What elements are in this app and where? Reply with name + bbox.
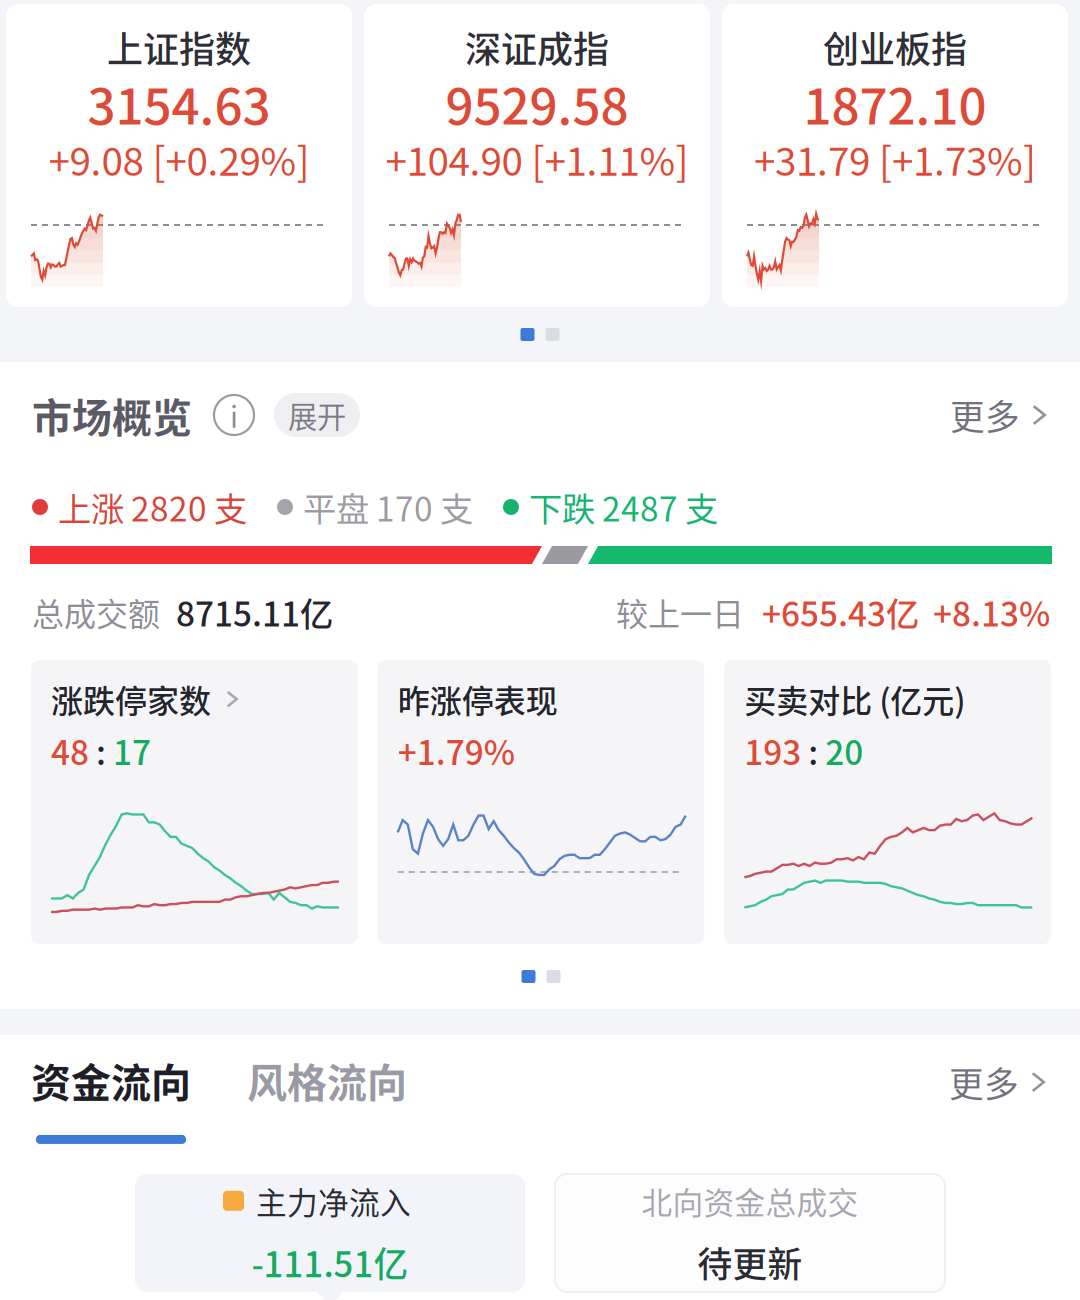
staticText: 1872.10 [803,67,986,139]
staticText: +655.43亿 [762,588,919,636]
staticText: 风格流向 [247,1051,407,1109]
staticText: +9.08 [+0.29%] [48,131,309,187]
staticText: 48 [51,726,89,775]
staticText: i [230,394,238,436]
staticText: 下跌 2487 支 [529,483,718,531]
staticText: 193 [744,726,801,775]
staticText: : [96,726,106,775]
staticText: 昨涨停表现 [398,676,558,722]
button[interactable]: 风格流向 [247,1051,407,1109]
staticText: 展开 [288,394,346,436]
staticText: 9529.58 [445,67,628,139]
staticText: 较上一日 [616,589,744,635]
staticText: 资金流向 [31,1051,191,1109]
button[interactable]: 涨跌停家数 [31,660,358,944]
staticText: 8715.11亿 [176,588,333,636]
button[interactable]: 更多 [950,390,1050,440]
staticText: 买卖对比 (亿元) [744,676,965,722]
staticText: 20 [825,726,863,775]
staticText: 17 [113,726,151,775]
button[interactable]: 更多 [949,1057,1049,1107]
staticText: 待更新 [697,1237,802,1287]
button[interactable]: 主力净流入 [135,1174,525,1300]
staticText: 3154.63 [87,67,270,139]
button[interactable]: 昨涨停表现 [378,660,704,944]
button[interactable]: 上证指数 [6,4,352,307]
button[interactable]: 买卖对比 (亿元) [724,660,1051,944]
button[interactable]: 说明 [214,395,254,435]
staticText: 深证成指 [465,21,609,73]
staticText: : [808,726,818,775]
staticText: +8.13% [933,588,1050,636]
button[interactable]: 深证成指 [364,4,710,307]
staticText: +104.90 [+1.11%] [385,131,688,187]
button[interactable]: 展开 [274,393,360,437]
staticText: 更多 [949,1057,1019,1107]
button[interactable]: 资金流向 [31,1051,191,1144]
staticText: 涨跌停家数 [51,676,211,722]
button[interactable]: 创业板指 [722,4,1068,307]
staticText: 总成交额 [32,589,160,635]
staticText: 主力净流入 [256,1179,411,1223]
staticText: -111.51亿 [251,1237,408,1287]
staticText: +31.79 [+1.73%] [754,131,1036,187]
staticText: 上涨 2820 支 [58,483,247,531]
staticText: 北向资金总成交 [641,1179,858,1223]
staticText: 平盘 170 支 [303,483,473,531]
staticText: 上证指数 [107,21,251,73]
staticText: 创业板指 [823,21,967,73]
staticText: 更多 [950,390,1020,440]
staticText: +1.79% [398,726,515,775]
staticText: 市场概览 [32,386,192,444]
button[interactable]: 北向资金总成交 [555,1174,945,1292]
